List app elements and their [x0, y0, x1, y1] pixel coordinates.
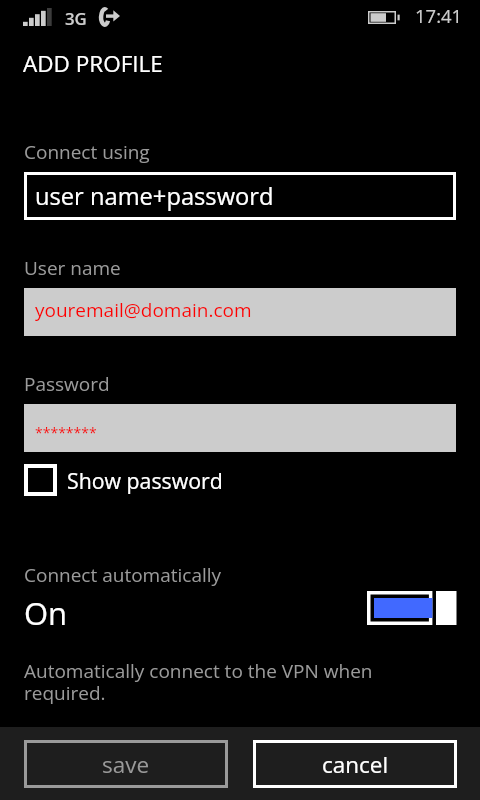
staticText: Automatically connect to the VPN when re…	[24, 660, 373, 704]
staticText: ********	[35, 423, 97, 442]
button[interactable]: Connect automatically	[367, 591, 457, 625]
staticText: youremail@domain.com	[35, 297, 252, 323]
staticText: cancel	[322, 749, 389, 780]
staticText: On	[24, 592, 68, 634]
other: Call forwarding	[99, 7, 120, 27]
button[interactable]: save	[24, 740, 228, 788]
staticText: 17:41	[415, 3, 463, 28]
staticText: Connect automatically	[24, 562, 222, 588]
staticText: save	[102, 749, 150, 780]
staticText: Show password	[67, 466, 223, 495]
staticText: User name	[24, 255, 121, 281]
staticText: user name+password	[35, 180, 274, 212]
staticText: Connect using	[24, 139, 150, 165]
button[interactable]: Show password	[24, 464, 223, 496]
button[interactable]: cancel	[253, 740, 457, 788]
button[interactable]: youremail@domain.com	[24, 288, 456, 336]
staticText: Password	[24, 371, 110, 397]
button[interactable]: ********	[24, 404, 456, 452]
staticText: ADD PROFILE	[23, 48, 163, 79]
button[interactable]: user name+password	[24, 172, 456, 220]
staticText: 3G	[65, 7, 87, 30]
